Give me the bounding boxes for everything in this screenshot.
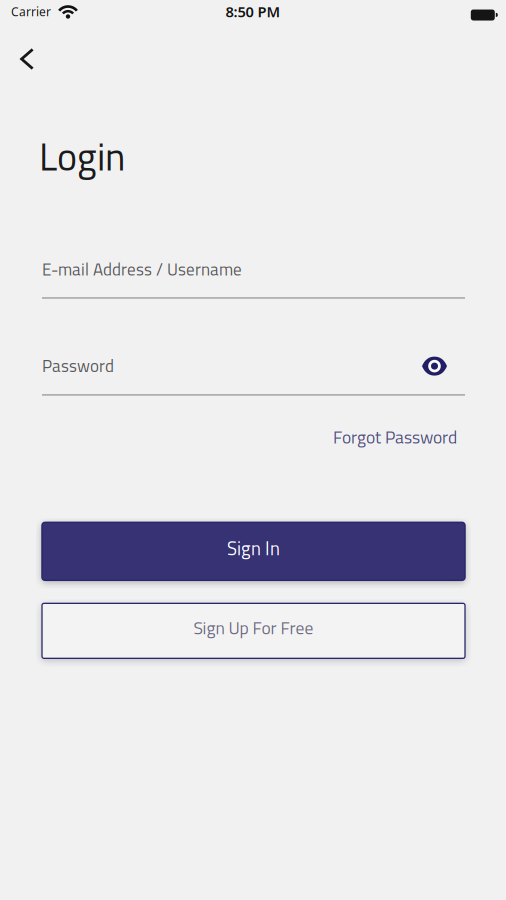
staticText: Sign In bbox=[227, 534, 280, 562]
staticText: Password bbox=[42, 353, 114, 379]
staticText: 8:50 PM bbox=[225, 2, 280, 21]
staticText: E-mail Address / Username bbox=[42, 256, 242, 282]
button[interactable] bbox=[0, 28, 44, 78]
staticText: Forgot Password bbox=[333, 424, 457, 450]
button[interactable]: Sign Up For Free bbox=[42, 603, 465, 658]
button[interactable] bbox=[422, 357, 465, 379]
staticText: Carrier bbox=[11, 3, 51, 19]
staticText: Sign Up For Free bbox=[193, 614, 313, 641]
staticText: Login bbox=[39, 127, 125, 185]
button[interactable]: Sign In bbox=[42, 522, 465, 580]
button[interactable]: Password bbox=[0, 353, 506, 396]
button[interactable]: Forgot Password bbox=[333, 424, 457, 450]
button[interactable]: E-mail Address / Username bbox=[0, 256, 506, 299]
